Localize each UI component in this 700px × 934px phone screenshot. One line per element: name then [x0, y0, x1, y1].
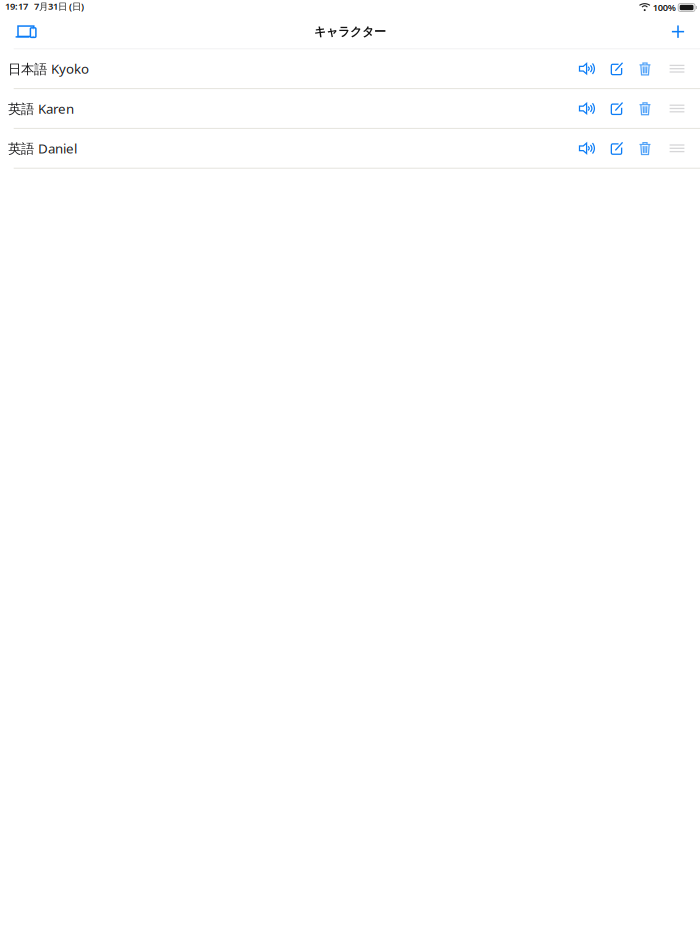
staticText: 英語 Karen [8, 100, 74, 117]
button[interactable]: Reorder [662, 129, 692, 168]
button[interactable]: Delete [628, 49, 662, 88]
button[interactable]: Edit [606, 89, 628, 128]
staticText: 英語 Daniel [8, 139, 77, 157]
button[interactable]: Speak [568, 89, 606, 128]
staticText: 日本語 Kyoko [8, 60, 89, 77]
staticText: キャラクター [314, 24, 386, 39]
button[interactable]: Speak [568, 49, 606, 88]
button[interactable]: Delete [628, 129, 662, 168]
button[interactable]: Delete [628, 89, 662, 128]
button[interactable]: Add [661, 15, 695, 48]
button[interactable]: Devices [8, 15, 44, 48]
button[interactable]: Reorder [662, 89, 692, 128]
button[interactable]: Edit [606, 129, 628, 168]
staticText: 19:17 7月31日 (日) [5, 0, 84, 12]
button[interactable]: Edit [606, 49, 628, 88]
staticText: 100% [653, 1, 676, 14]
button[interactable]: Speak [568, 129, 606, 168]
button[interactable]: Reorder [662, 49, 692, 88]
